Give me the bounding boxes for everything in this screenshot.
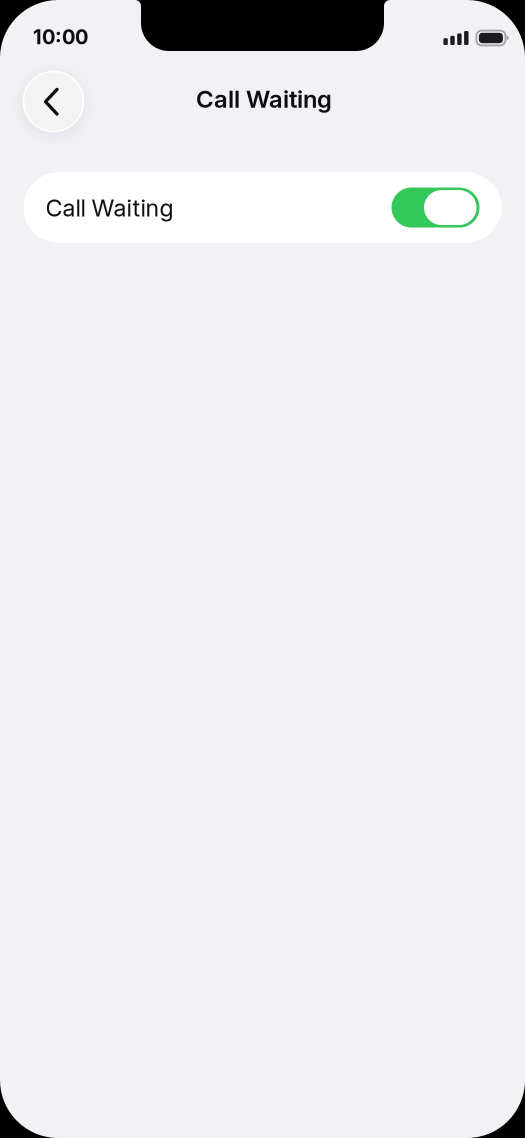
button[interactable]: Call Waiting	[23, 172, 501, 243]
button[interactable]: Back	[23, 71, 84, 132]
staticText: Call Waiting	[196, 84, 332, 113]
staticText: Call Waiting	[45, 194, 173, 222]
staticText: 10:00	[33, 25, 88, 49]
